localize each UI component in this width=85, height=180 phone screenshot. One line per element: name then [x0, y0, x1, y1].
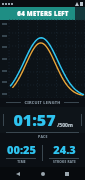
staticText: /500m	[57, 122, 73, 129]
button[interactable]: Home	[36, 167, 50, 180]
button[interactable]: Back	[11, 167, 25, 180]
staticText: 24.3	[53, 142, 76, 157]
staticText: 64 METERS LEFT	[17, 10, 69, 18]
button[interactable]: 00:25	[0, 139, 42, 167]
staticText: PACE	[38, 134, 48, 139]
button[interactable]: 24.3	[43, 139, 85, 167]
button[interactable]: 64 METERS LEFT	[0, 7, 85, 20]
staticText: 00:25	[7, 142, 36, 157]
button[interactable]: Recents	[60, 167, 74, 180]
staticText: TIME	[17, 160, 26, 164]
staticText: 01:57	[13, 109, 56, 131]
button[interactable]: 01:57	[0, 107, 85, 133]
staticText: CIRCUIT LENGTH	[24, 100, 61, 105]
staticText: STROKE RATE	[53, 160, 76, 164]
